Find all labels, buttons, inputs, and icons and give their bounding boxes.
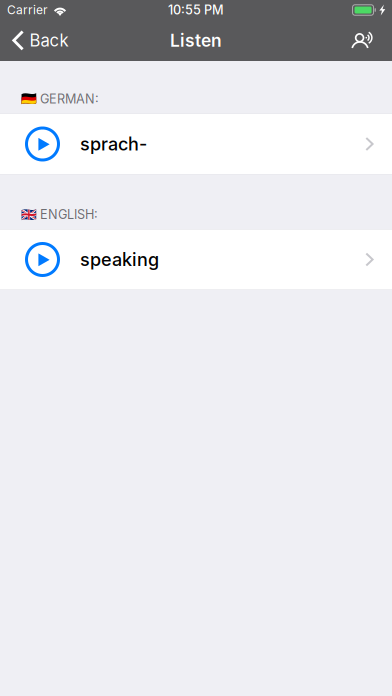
- staticText: Carrier: [7, 3, 48, 17]
- button[interactable]: Back: [0, 20, 78, 61]
- staticText: speaking: [80, 249, 159, 270]
- staticText: Listen: [170, 30, 222, 51]
- button[interactable]: speaking: [0, 229, 392, 290]
- staticText: GERMAN:: [40, 91, 99, 106]
- button[interactable]: Speak: [339, 20, 392, 61]
- button[interactable]: sprach-: [0, 113, 392, 174]
- staticText: 🇩🇪: [21, 91, 37, 106]
- staticText: 10:55 PM: [168, 2, 224, 18]
- staticText: sprach-: [80, 133, 147, 155]
- staticText: 🇬🇧: [21, 207, 37, 222]
- staticText: Back: [29, 30, 68, 51]
- staticText: ENGLISH:: [40, 207, 98, 222]
